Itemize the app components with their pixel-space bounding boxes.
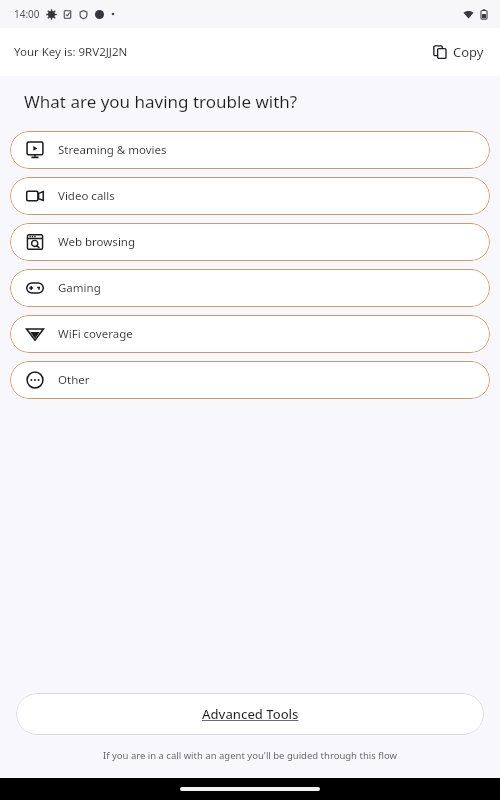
staticText: Web browsing [58, 234, 136, 250]
button[interactable]: WiFi coverage [10, 315, 490, 353]
button[interactable]: Gaming [10, 269, 490, 307]
staticText: Advanced Tools [202, 705, 299, 723]
staticText: What are you having trouble with? [24, 90, 298, 113]
button[interactable]: Advanced Tools [16, 693, 484, 735]
staticText: Video calls [58, 188, 115, 204]
staticText: 14:00 [14, 7, 40, 21]
button[interactable]: Web browsing [10, 223, 490, 261]
staticText: Your Key is: 9RV2JJ2N [14, 44, 128, 60]
button[interactable]: Video calls [10, 177, 490, 215]
button[interactable]: Streaming & movies [10, 131, 490, 169]
staticText: WiFi coverage [58, 326, 133, 342]
staticText: If you are in a call with an agent you'l… [103, 749, 397, 762]
staticText: Streaming & movies [58, 142, 167, 158]
staticText: Other [58, 372, 90, 388]
staticText: Gaming [58, 280, 101, 296]
button[interactable]: Copy [429, 39, 488, 65]
staticText: Copy [453, 43, 484, 61]
button[interactable]: Other [10, 361, 490, 399]
